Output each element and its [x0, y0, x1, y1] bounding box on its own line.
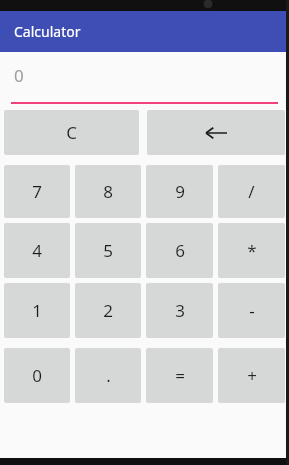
- staticText: +: [247, 364, 257, 387]
- staticText: 4: [32, 239, 42, 262]
- staticText: -: [249, 299, 255, 322]
- button[interactable]: -: [218, 283, 285, 338]
- button[interactable]: .: [75, 348, 141, 403]
- button[interactable]: Backspace: [147, 110, 285, 155]
- staticText: 9: [175, 180, 185, 203]
- staticText: 8: [103, 180, 113, 203]
- button[interactable]: +: [218, 348, 285, 403]
- staticText: C: [66, 121, 77, 144]
- button[interactable]: =: [146, 348, 213, 403]
- staticText: 5: [103, 239, 113, 262]
- button[interactable]: 1: [4, 283, 70, 338]
- staticText: 0: [14, 64, 24, 87]
- staticText: 0: [32, 364, 42, 387]
- button[interactable]: 6: [146, 223, 213, 278]
- button[interactable]: 2: [75, 283, 141, 338]
- staticText: Calculator: [14, 22, 81, 41]
- button[interactable]: 8: [75, 165, 141, 218]
- button[interactable]: 9: [146, 165, 213, 218]
- staticText: 3: [175, 299, 185, 322]
- button[interactable]: *: [218, 223, 285, 278]
- staticText: .: [106, 364, 111, 387]
- staticText: 1: [32, 299, 42, 322]
- button[interactable]: 4: [4, 223, 70, 278]
- staticText: 7: [32, 180, 42, 203]
- staticText: *: [247, 239, 257, 262]
- button[interactable]: 0: [4, 348, 70, 403]
- button[interactable]: C: [4, 110, 139, 155]
- staticText: 6: [175, 239, 185, 262]
- button[interactable]: /: [218, 165, 285, 218]
- button[interactable]: 3: [146, 283, 213, 338]
- staticText: =: [175, 364, 185, 387]
- staticText: 2: [103, 299, 113, 322]
- button[interactable]: 7: [4, 165, 70, 218]
- staticText: /: [248, 180, 255, 203]
- button[interactable]: 5: [75, 223, 141, 278]
